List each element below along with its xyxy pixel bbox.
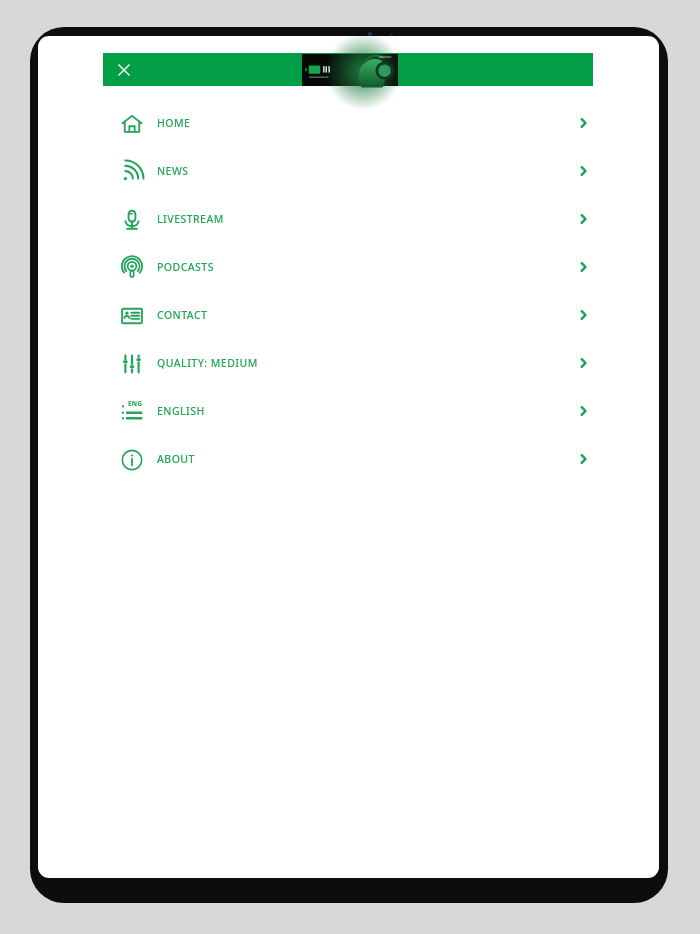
staticText: LIVESTREAM [157, 212, 224, 226]
button[interactable]: NEWS [103, 147, 659, 195]
staticText: ENG [128, 399, 143, 408]
button[interactable]: QUALITY: MEDIUM [103, 339, 659, 387]
button[interactable]: HOME [103, 99, 659, 147]
button[interactable]: ENG [103, 387, 659, 435]
staticText: CONTACT [157, 308, 208, 322]
button[interactable]: PODCASTS [103, 243, 659, 291]
staticText: HOME [157, 116, 191, 130]
button[interactable]: ABOUT [103, 435, 659, 483]
staticText: ENGLISH [157, 404, 205, 418]
staticText: PODCASTS [157, 260, 214, 274]
button[interactable]: CONTACT [103, 291, 659, 339]
button[interactable]: LIVESTREAM [103, 195, 659, 243]
button[interactable]: Mix 93.8 station banner [302, 54, 398, 86]
staticText: NEWS [157, 164, 189, 178]
button[interactable]: Close menu [110, 56, 138, 84]
staticText: ABOUT [157, 452, 195, 466]
staticText: QUALITY: MEDIUM [157, 356, 258, 370]
